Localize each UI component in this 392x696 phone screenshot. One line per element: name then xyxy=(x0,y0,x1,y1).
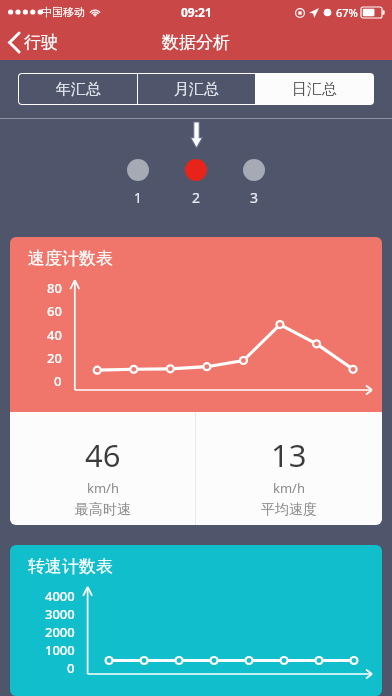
staticText: 1000 xyxy=(45,641,75,659)
button[interactable]: Back xyxy=(0,28,68,57)
staticText: 60 xyxy=(47,302,62,320)
staticText: 最高时速 xyxy=(75,501,131,519)
staticText: 中国移动 xyxy=(41,5,85,19)
staticText: 4000 xyxy=(45,587,75,605)
staticText: 67% xyxy=(336,5,358,20)
staticText: 13 xyxy=(271,434,307,476)
staticText: 日汇总 xyxy=(292,80,337,99)
button[interactable]: 46 xyxy=(10,412,195,525)
staticText: 转速计数表 xyxy=(28,556,113,577)
button[interactable]: 速度计数表 xyxy=(10,237,382,525)
staticText: 46 xyxy=(85,434,121,476)
staticText: km/h xyxy=(87,479,119,497)
button[interactable]: 月汇总 xyxy=(138,74,255,104)
staticText: 80 xyxy=(47,279,62,297)
button[interactable]: 2 xyxy=(185,159,207,207)
button[interactable]: 1 xyxy=(127,159,149,207)
button[interactable]: 日汇总 xyxy=(256,74,373,104)
button[interactable]: 年汇总 xyxy=(19,74,137,104)
staticText: 0 xyxy=(54,372,62,390)
button[interactable]: 3 xyxy=(243,159,265,207)
button[interactable]: 转速计数表 xyxy=(10,545,382,696)
staticText: 1 xyxy=(134,188,143,207)
staticText: km/h xyxy=(273,479,305,497)
staticText: 2 xyxy=(192,188,201,207)
staticText: 20 xyxy=(47,349,62,367)
staticText: 数据分析 xyxy=(162,32,230,53)
staticText: 3000 xyxy=(45,605,75,623)
staticText: 3 xyxy=(250,188,259,207)
staticText: 速度计数表 xyxy=(28,248,113,269)
staticText: 行驶 xyxy=(24,32,58,53)
staticText: 月汇总 xyxy=(174,80,219,99)
button[interactable]: 13 xyxy=(196,412,382,525)
staticText: 0 xyxy=(67,659,75,674)
staticText: 09:21 xyxy=(181,4,212,20)
staticText: 2000 xyxy=(45,623,75,641)
staticText: 40 xyxy=(47,326,62,344)
staticText: 平均速度 xyxy=(261,501,317,519)
staticText: 年汇总 xyxy=(56,80,101,99)
